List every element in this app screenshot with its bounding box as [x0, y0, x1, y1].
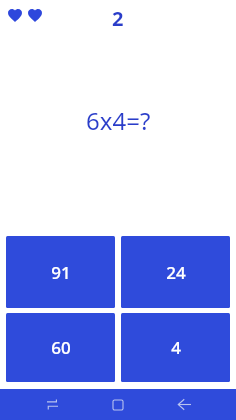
staticText: 60 [51, 336, 71, 359]
staticText: 24 [166, 261, 186, 284]
staticText: 6x4=? [86, 104, 151, 137]
button[interactable]: Home [102, 389, 134, 420]
staticText: 91 [51, 261, 71, 284]
staticText: 2 [112, 5, 124, 32]
button[interactable]: Back [168, 389, 200, 420]
button[interactable]: 4 [121, 313, 230, 382]
button[interactable]: 24 [121, 236, 230, 308]
staticText: 4 [171, 336, 181, 359]
button[interactable]: 60 [6, 313, 115, 382]
button[interactable]: 91 [6, 236, 115, 308]
button[interactable]: Recent apps [36, 389, 68, 420]
